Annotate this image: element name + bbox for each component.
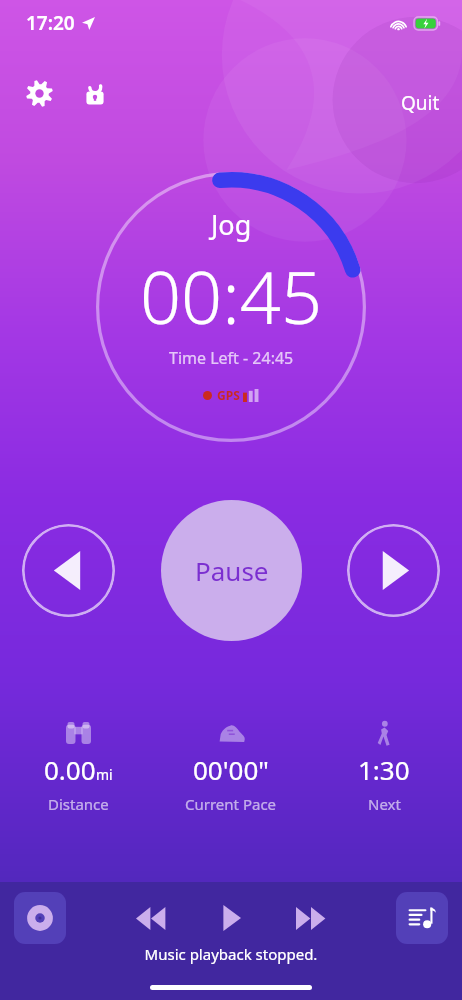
staticText: 17:20	[26, 10, 75, 36]
button[interactable]: 1:30	[309, 718, 459, 816]
button[interactable]: Previous track	[129, 896, 173, 940]
staticText: Music playback stopped.	[0, 944, 462, 964]
button[interactable]: Previous interval	[22, 524, 115, 617]
button[interactable]: Lock screen	[72, 70, 118, 116]
staticText: 00:45	[140, 247, 323, 345]
staticText: Current Pace	[185, 794, 277, 814]
staticText: Distance	[48, 794, 109, 814]
staticText: Jog	[211, 206, 252, 243]
button[interactable]: Playlist	[396, 892, 448, 944]
button[interactable]: Music source	[14, 892, 66, 944]
staticText: 00'00"	[193, 752, 269, 787]
button[interactable]: Settings	[16, 70, 62, 116]
button[interactable]: Quit	[391, 84, 450, 122]
staticText: Next	[368, 794, 401, 814]
button[interactable]: 0.00	[3, 718, 153, 816]
staticText: 0.00	[44, 752, 96, 787]
button[interactable]: Next track	[289, 896, 333, 940]
staticText: 1:30	[358, 752, 410, 787]
staticText: GPS	[217, 387, 240, 403]
button[interactable]: 00'00"	[156, 718, 306, 816]
staticText: Time Left - 24:45	[169, 347, 294, 369]
staticText: Pause	[195, 553, 269, 588]
button[interactable]: Pause	[161, 500, 302, 641]
staticText: Quit	[401, 90, 440, 116]
button[interactable]: Play	[209, 896, 253, 940]
staticText: mi	[96, 765, 113, 784]
button[interactable]: Next interval	[347, 524, 440, 617]
